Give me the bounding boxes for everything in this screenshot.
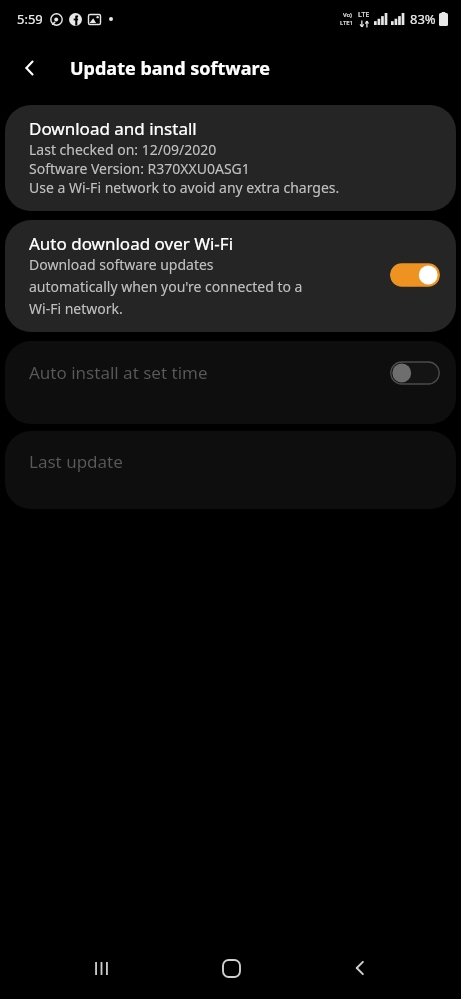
button[interactable]: Recent apps bbox=[73, 940, 129, 996]
staticText: 5:59 bbox=[17, 10, 43, 28]
staticText: Auto install at set time bbox=[29, 361, 208, 384]
staticText: Update band software bbox=[70, 56, 270, 81]
staticText: LTE bbox=[358, 10, 370, 20]
button[interactable]: Home bbox=[203, 940, 259, 996]
button[interactable]: Toggle on bbox=[390, 261, 440, 289]
staticText: Download software updates automatically … bbox=[29, 255, 303, 318]
staticText: Auto download over Wi-Fi bbox=[29, 232, 234, 255]
staticText: Software Version: R370XXU0ASG1 bbox=[29, 159, 250, 178]
staticText: Last checked on: 12/09/2020 bbox=[29, 140, 217, 159]
button[interactable]: Download and install bbox=[5, 105, 456, 211]
staticText: LTE1 bbox=[340, 19, 354, 27]
button[interactable]: Auto download over Wi-Fi bbox=[5, 220, 456, 332]
button[interactable]: Auto install at set time bbox=[5, 341, 456, 424]
staticText: Download and install bbox=[29, 117, 197, 140]
staticText: Vo) bbox=[343, 11, 352, 19]
button[interactable]: Toggle off bbox=[390, 359, 440, 387]
staticText: 83% bbox=[410, 10, 436, 28]
staticText: Last update bbox=[29, 450, 123, 473]
button[interactable]: Back bbox=[12, 50, 48, 86]
button[interactable]: Back bbox=[332, 940, 388, 996]
staticText: Use a Wi-Fi network to avoid any extra c… bbox=[29, 178, 340, 197]
button[interactable]: Last update bbox=[5, 431, 456, 509]
